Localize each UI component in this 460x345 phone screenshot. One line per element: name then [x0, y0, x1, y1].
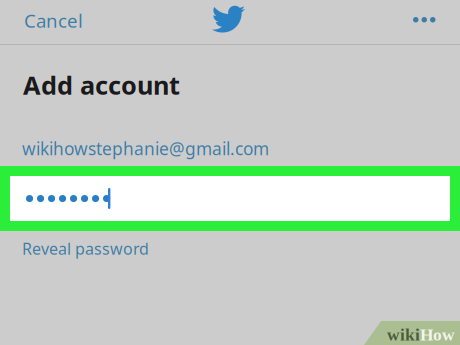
- staticText: How: [420, 325, 455, 344]
- staticText: Cancel: [24, 8, 83, 33]
- staticText: Reveal password: [22, 238, 149, 259]
- staticText: wiki: [387, 325, 420, 344]
- button[interactable]: Reveal password: [0, 231, 167, 266]
- button[interactable]: Cancel: [0, 0, 97, 42]
- staticText: Add account: [23, 68, 180, 102]
- staticText: wikihowstephanie@gmail.com: [22, 137, 269, 160]
- button[interactable]: More options: [397, 3, 459, 36]
